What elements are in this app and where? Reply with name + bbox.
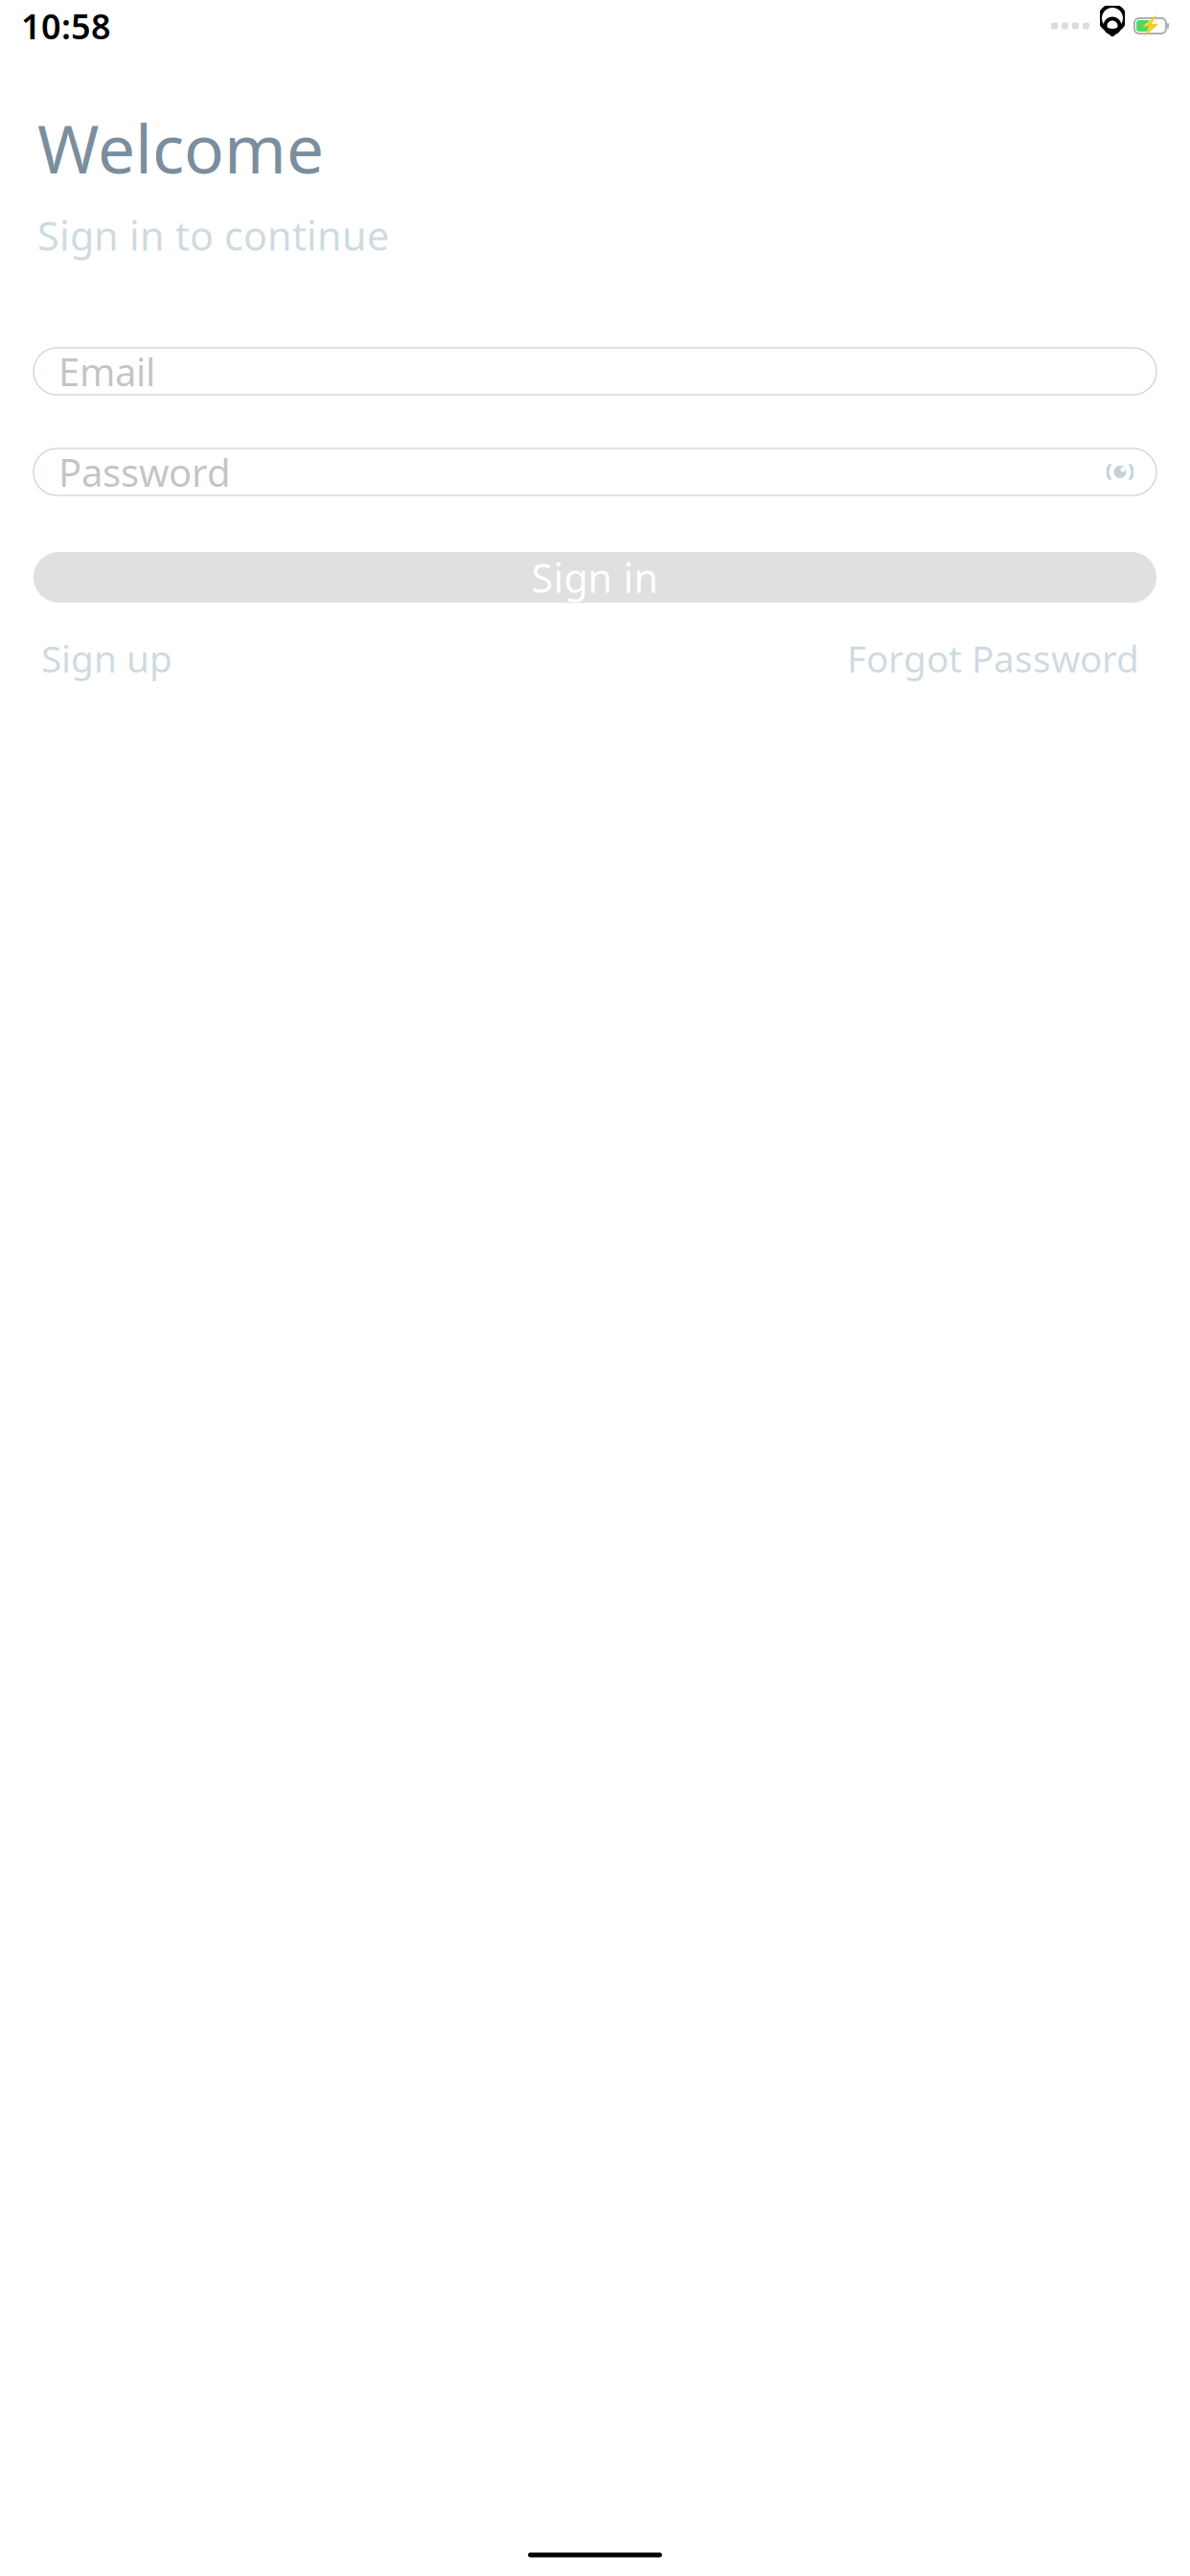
staticText: Sign in to continue — [37, 209, 389, 262]
button[interactable]: Sign up — [41, 628, 172, 688]
staticText: Forgot Password — [847, 633, 1139, 683]
button[interactable]: Show password — [1101, 448, 1139, 495]
staticText: Email — [58, 346, 155, 397]
staticText: Sign up — [41, 633, 172, 683]
staticText: Password — [58, 446, 231, 497]
staticText: Sign in — [531, 551, 659, 604]
button[interactable]: Forgot Password — [847, 628, 1139, 688]
staticText: 10:58 — [21, 3, 111, 49]
button[interactable]: Sign in — [34, 552, 1156, 603]
staticText: Welcome — [37, 103, 324, 192]
staticText: ⚡ — [1139, 16, 1161, 36]
